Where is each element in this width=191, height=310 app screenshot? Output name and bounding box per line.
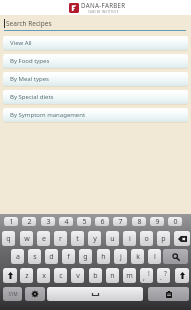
button[interactable]: n	[106, 268, 119, 283]
button[interactable]: w	[20, 231, 33, 246]
button[interactable]: j	[114, 249, 127, 264]
button[interactable]: d	[45, 249, 58, 264]
staticText: By Special diets	[10, 93, 54, 101]
staticText: 6	[100, 217, 105, 226]
button[interactable]: !	[140, 268, 153, 283]
button[interactable]: l	[148, 249, 161, 264]
button[interactable]: 2	[22, 217, 36, 226]
button[interactable]: c	[54, 268, 67, 283]
button[interactable]: t	[71, 231, 84, 246]
staticText: 7	[118, 217, 123, 226]
staticText: h	[101, 252, 106, 262]
button[interactable]: By Meal types	[3, 72, 188, 87]
button[interactable]: 0	[168, 217, 182, 226]
button[interactable]: u	[106, 231, 119, 246]
button[interactable]: Done	[148, 287, 189, 301]
staticText: 1	[9, 217, 14, 226]
staticText: k	[136, 252, 140, 262]
staticText: ?	[164, 269, 167, 278]
staticText: g	[83, 252, 88, 262]
staticText: 8	[137, 217, 142, 226]
button[interactable]: Shift	[175, 268, 189, 283]
button[interactable]: By Symptom management	[3, 108, 188, 123]
button[interactable]: y	[88, 231, 101, 246]
staticText: w	[24, 234, 30, 244]
button[interactable]: s	[28, 249, 41, 264]
staticText: 0	[173, 217, 178, 226]
button[interactable]: x	[37, 268, 50, 283]
button[interactable]: e	[37, 231, 50, 246]
button[interactable]: Backspace	[174, 231, 190, 246]
button[interactable]: f	[62, 249, 75, 264]
button[interactable]: 8	[132, 217, 146, 226]
button[interactable]: View All	[3, 36, 188, 51]
button[interactable]: k	[131, 249, 144, 264]
button[interactable]: p	[157, 231, 170, 246]
staticText: p	[161, 234, 166, 244]
button[interactable]: By Food types	[3, 54, 188, 69]
button[interactable]: Shift	[3, 268, 17, 283]
staticText: x	[42, 271, 46, 281]
staticText: 3	[46, 217, 51, 226]
button[interactable]: r	[54, 231, 67, 246]
button[interactable]: 5	[77, 217, 91, 226]
staticText: t	[76, 234, 79, 244]
button[interactable]: a	[11, 249, 24, 264]
staticText: q	[6, 234, 11, 244]
button[interactable]: z	[20, 268, 33, 283]
staticText: l	[154, 252, 156, 262]
button[interactable]: Settings	[25, 287, 45, 301]
staticText: .	[160, 273, 162, 282]
staticText: e	[42, 234, 46, 244]
staticText: v	[76, 271, 80, 281]
button[interactable]: v	[71, 268, 84, 283]
button[interactable]: 6	[95, 217, 109, 226]
staticText: By Food types	[10, 57, 50, 65]
staticText: Search Recipes	[6, 19, 52, 28]
button[interactable]: h	[97, 249, 110, 264]
button[interactable]: q	[2, 231, 15, 246]
staticText: 2	[27, 217, 32, 226]
button[interactable]: Space	[47, 287, 143, 301]
staticText: u	[110, 234, 115, 244]
staticText: o	[144, 234, 149, 244]
staticText: b	[93, 271, 98, 281]
staticText: c	[59, 271, 63, 281]
staticText: s	[33, 252, 37, 262]
staticText: DANA-FARBER	[81, 1, 126, 9]
staticText: f	[67, 252, 70, 262]
staticText: CANCER INSTITUTE	[88, 10, 119, 14]
staticText: i	[129, 234, 131, 244]
staticText: d	[49, 252, 54, 262]
staticText: j	[120, 252, 122, 262]
staticText: By Meal types	[10, 75, 49, 83]
button[interactable]: b	[89, 268, 102, 283]
button[interactable]: SYM	[3, 287, 22, 301]
button[interactable]: 9	[150, 217, 164, 226]
button[interactable]: g	[79, 249, 92, 264]
staticText: 9	[155, 217, 160, 226]
button[interactable]: 4	[59, 217, 73, 226]
staticText: View All	[10, 39, 32, 47]
staticText: ,	[143, 273, 145, 282]
button[interactable]: i	[123, 231, 136, 246]
button[interactable]: ?	[157, 268, 170, 283]
staticText: SYM	[8, 291, 18, 297]
staticText: a	[16, 252, 20, 262]
button[interactable]: 3	[41, 217, 55, 226]
staticText: y	[93, 234, 97, 244]
button[interactable]: 1	[4, 217, 18, 226]
staticText: 4	[64, 217, 69, 226]
staticText: m	[126, 271, 133, 281]
button[interactable]: Search	[163, 249, 188, 264]
staticText: z	[25, 271, 29, 281]
staticText: n	[110, 271, 115, 281]
button[interactable]: By Special diets	[3, 90, 188, 105]
staticText: r	[59, 234, 62, 244]
staticText: !	[148, 269, 150, 278]
staticText: 5	[82, 217, 87, 226]
button[interactable]: 7	[113, 217, 127, 226]
staticText: By Symptom management	[10, 111, 86, 119]
button[interactable]: o	[140, 231, 153, 246]
button[interactable]: m	[123, 268, 136, 283]
